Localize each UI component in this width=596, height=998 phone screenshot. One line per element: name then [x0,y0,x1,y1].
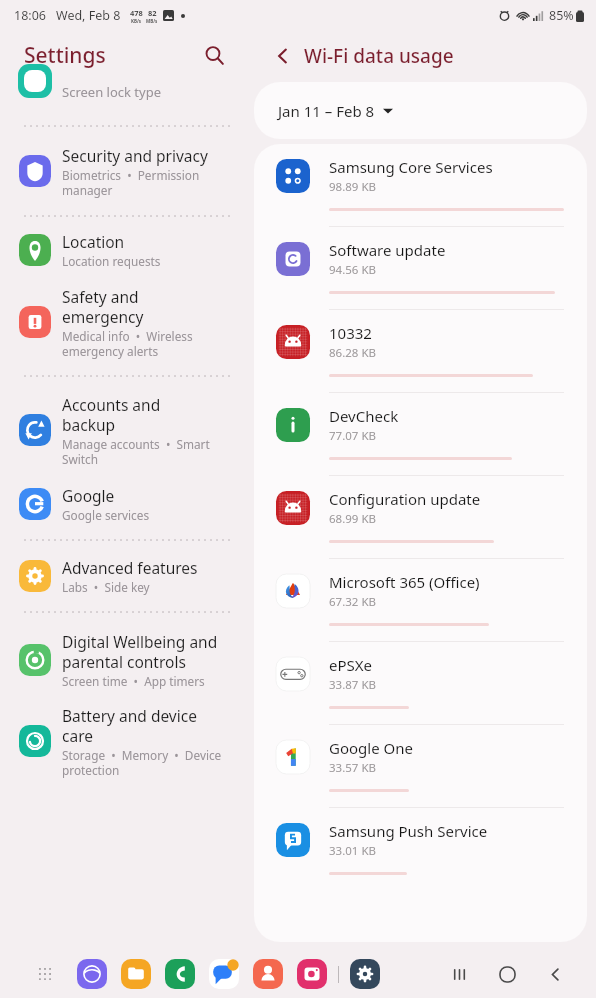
button[interactable]: Search [196,37,232,73]
staticText: Location requests [62,253,161,269]
button[interactable]: Accounts and backup [0,384,254,476]
button[interactable]: Samsung Push Service [254,807,587,890]
staticText: Screen lock type [62,83,161,101]
staticText: 68.99 KB [329,511,376,527]
staticText: Jan 11 – Feb 8 [278,101,375,121]
button[interactable]: Samsung Core Services [254,144,587,226]
staticText: Google services [62,507,150,523]
staticText: 77.07 KB [329,428,376,444]
staticText: 33.01 KB [329,843,376,859]
staticText: Accounts and backup [62,394,161,435]
staticText: 67.32 KB [329,594,376,610]
button[interactable]: Software update [254,226,587,309]
button[interactable]: ePSXe [254,641,587,724]
button[interactable]: Microsoft 365 (Office) [254,558,587,641]
button[interactable]: Apps [30,959,60,989]
button[interactable]: Advanced features [0,548,254,604]
staticText: 98.89 KB [329,179,376,195]
staticText: Manage accounts • Smart Switch [62,436,210,467]
button[interactable]: Configuration update [254,475,587,558]
button[interactable]: 10332 [254,309,587,392]
button[interactable]: phone [164,958,196,990]
button[interactable]: Safety and emergency [0,276,254,368]
staticText: Microsoft 365 (Office) [329,572,480,592]
staticText: Advanced features [62,557,198,578]
button[interactable]: internet [76,958,108,990]
button[interactable]: Google One [254,724,587,807]
staticText: Samsung Core Services [329,157,493,177]
button[interactable]: messages [208,958,240,990]
staticText: Google One [329,738,413,758]
button[interactable]: settings [349,958,381,990]
button[interactable]: Google [0,476,254,532]
staticText: Configuration update [329,489,481,509]
staticText: Wi-Fi data usage [304,43,454,69]
button[interactable]: Jan 11 – Feb 8 [254,82,587,139]
staticText: 86.28 KB [329,345,376,361]
staticText: Digital Wellbeing and parental controls [62,631,218,672]
staticText: Location [62,231,125,252]
button[interactable]: Back [538,957,572,991]
button[interactable]: Battery and device care [0,700,254,782]
button[interactable]: DevCheck [254,392,587,475]
staticText: Storage • Memory • Device protection [62,747,222,778]
staticText: 82 [148,8,157,18]
staticText: MB/s [146,18,158,24]
staticText: Software update [329,240,446,260]
staticText: Biometrics • Permission manager [62,167,200,198]
button[interactable]: files [120,958,152,990]
staticText: 33.87 KB [329,677,376,693]
staticText: KB/s [131,18,142,24]
staticText: 33.57 KB [329,760,376,776]
staticText: Samsung Push Service [329,821,488,841]
staticText: 85% [549,7,574,24]
staticText: Wed, Feb 8 [56,7,121,24]
staticText: Security and privacy [62,145,208,166]
staticText: 18:06 [14,7,46,24]
button[interactable]: Recents [442,957,476,991]
staticText: 478 [130,8,143,18]
staticText: Settings [24,41,106,70]
staticText: Battery and device care [62,705,197,746]
staticText: Labs • Side key [62,579,150,595]
staticText: Screen time • App timers [62,673,205,689]
staticText: Medical info • Wireless emergency alerts [62,328,193,359]
button[interactable]: contacts [252,958,284,990]
button[interactable]: Location [0,224,254,276]
button[interactable]: Security and privacy [0,134,254,208]
staticText: 94.56 KB [329,262,376,278]
button[interactable]: Back [266,39,300,73]
staticText: Safety and emergency [62,286,144,327]
button[interactable]: Digital Wellbeing and parental controls [0,620,254,700]
staticText: Google [62,485,115,506]
staticText: 10332 [329,323,372,343]
button[interactable]: instagram [296,958,328,990]
staticText: ePSXe [329,655,373,675]
button[interactable]: Home [490,957,524,991]
staticText: DevCheck [329,406,399,426]
